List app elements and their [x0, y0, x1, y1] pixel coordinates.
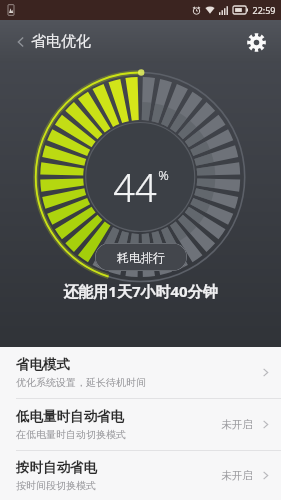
staticText: 按时间段切换模式 [16, 479, 96, 492]
staticText: 22:59 [252, 4, 276, 16]
button[interactable]: 省电模式 [0, 347, 281, 398]
staticText: 按时自动省电 [16, 459, 97, 476]
button[interactable]: Settings [239, 25, 273, 59]
staticText: 在低电量时自动切换模式 [16, 428, 126, 441]
staticText: 未开启 [221, 469, 253, 482]
button[interactable]: 低电量时自动省电 [0, 399, 281, 450]
staticText: 省电优化 [31, 32, 91, 51]
staticText: % [158, 166, 169, 184]
button[interactable]: Back [6, 27, 36, 57]
staticText: 优化系统设置，延长待机时间 [16, 376, 146, 389]
staticText: 还能用1天7小时40分钟 [63, 281, 218, 301]
staticText: 未开启 [221, 418, 253, 431]
staticText: 省电模式 [16, 356, 70, 373]
staticText: 耗电排行 [117, 250, 165, 265]
button[interactable]: 按时自动省电 [0, 451, 281, 500]
button[interactable]: 耗电排行 [95, 243, 187, 271]
staticText: 44 [113, 161, 157, 213]
staticText: 低电量时自动省电 [16, 408, 124, 425]
